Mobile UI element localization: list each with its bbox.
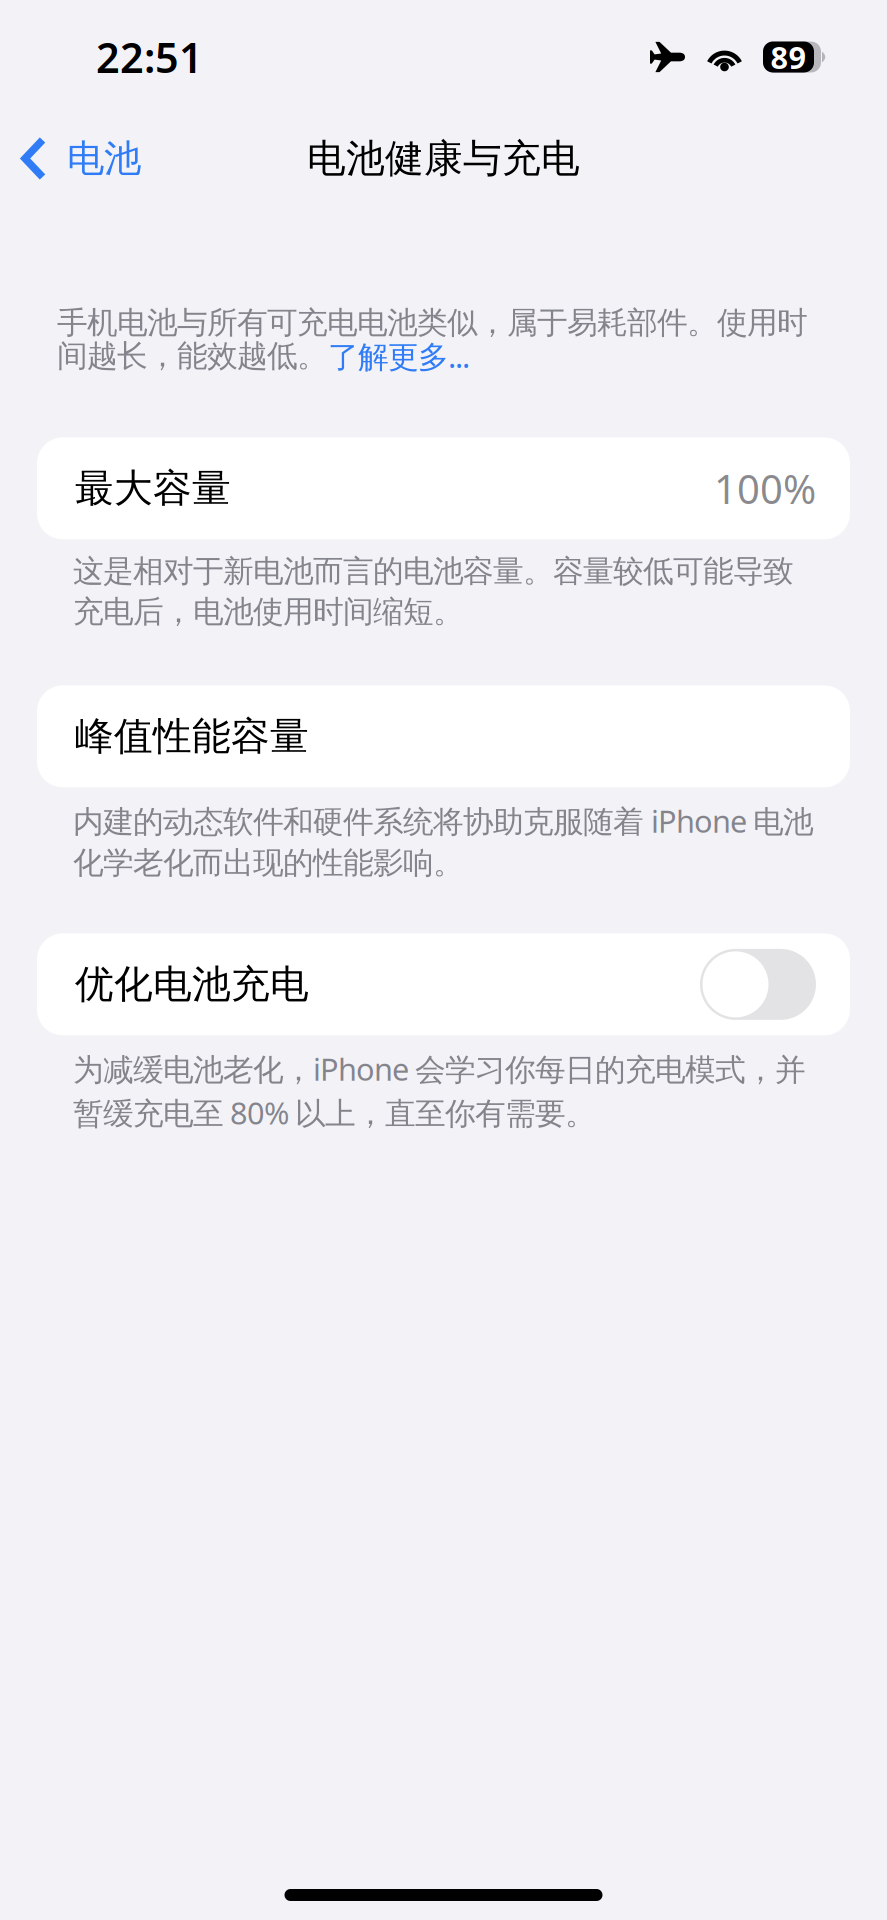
- button[interactable]: 了解更多...: [328, 336, 470, 376]
- staticText: 电池: [67, 136, 141, 181]
- staticText: 化学老化而出现的性能影响。: [73, 844, 464, 882]
- staticText: 充电后，电池使用时间缩短。: [73, 593, 464, 631]
- staticText: 最大容量: [75, 465, 231, 512]
- staticText: 间越长，能效越低。: [57, 337, 328, 375]
- staticText: 暂缓充电至 80% 以上，直至你有需要。: [73, 1092, 596, 1133]
- staticText: 手机电池与所有可充电电池类似，属于易耗部件。使用时: [57, 304, 808, 342]
- button[interactable]: 电池: [0, 124, 162, 193]
- staticText: 峰值性能容量: [75, 713, 309, 760]
- staticText: 89: [770, 37, 806, 77]
- staticText: 优化电池充电: [75, 961, 309, 1008]
- staticText: 这是相对于新电池而言的电池容量。容量较低可能导致: [73, 552, 794, 590]
- staticText: 为减缓电池老化，iPhone 会学习你每日的充电模式，并: [73, 1048, 806, 1089]
- staticText: 了解更多...: [328, 336, 470, 376]
- staticText: 22:51: [96, 30, 203, 84]
- staticText: 内建的动态软件和硬件系统将协助克服随着 iPhone 电池: [73, 800, 814, 841]
- staticText: 电池健康与充电: [307, 135, 580, 182]
- staticText: 100%: [714, 462, 816, 515]
